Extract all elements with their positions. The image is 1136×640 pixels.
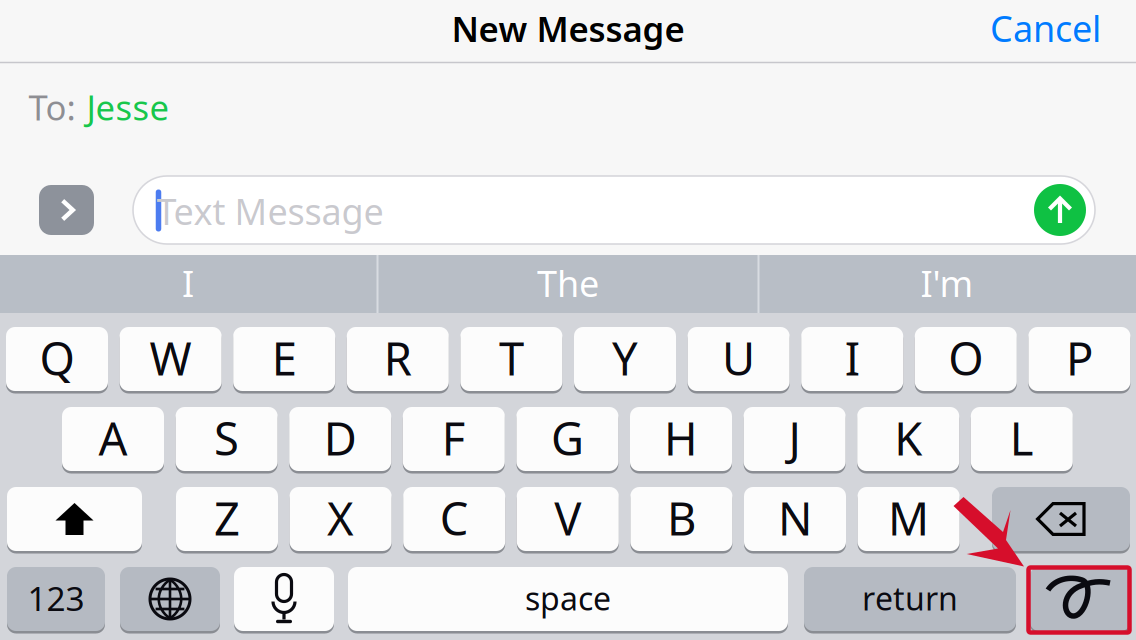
button[interactable]: Z	[176, 487, 278, 551]
staticText: P	[1066, 328, 1093, 388]
button[interactable]: I	[0, 255, 376, 313]
staticText: D	[324, 408, 357, 468]
staticText: B	[667, 488, 696, 548]
button[interactable]: Dictation	[234, 567, 334, 631]
staticText: J	[789, 408, 801, 468]
button[interactable]: L	[971, 407, 1073, 471]
staticText: L	[1010, 408, 1034, 468]
button[interactable]: Q	[6, 327, 108, 391]
button[interactable]: U	[688, 327, 790, 391]
staticText: Y	[612, 328, 638, 388]
staticText: Text Message	[156, 187, 383, 235]
button[interactable]: 123	[7, 567, 105, 631]
staticText: I	[182, 259, 194, 307]
button[interactable]: K	[857, 407, 959, 471]
staticText: S	[214, 408, 239, 468]
staticText: A	[98, 408, 127, 468]
button[interactable]: Next keyboard	[120, 567, 220, 631]
staticText: I'm	[920, 259, 973, 307]
button[interactable]: F	[403, 407, 505, 471]
staticText: E	[272, 328, 297, 388]
button[interactable]: A	[62, 407, 164, 471]
button[interactable]: I'm	[759, 255, 1135, 313]
staticText: New Message	[451, 5, 684, 51]
staticText: return	[862, 577, 958, 619]
button[interactable]: Cancel	[976, 0, 1115, 62]
staticText: H	[664, 408, 698, 468]
button[interactable]: H	[630, 407, 732, 471]
staticText: Cancel	[990, 4, 1101, 52]
staticText: Q	[39, 328, 74, 388]
staticText: M	[888, 488, 929, 548]
staticText: V	[554, 488, 581, 548]
button[interactable]: W	[120, 327, 222, 391]
button[interactable]: B	[630, 487, 732, 551]
button[interactable]: More apps	[39, 185, 94, 235]
button[interactable]: The	[380, 255, 756, 313]
button[interactable]: E	[233, 327, 335, 391]
staticText: Z	[214, 488, 240, 548]
staticText: X	[327, 488, 354, 548]
staticText: T	[499, 328, 524, 388]
button[interactable]: O	[915, 327, 1017, 391]
button[interactable]: P	[1028, 327, 1130, 391]
button[interactable]: return	[804, 567, 1016, 631]
button[interactable]: Y	[574, 327, 676, 391]
button[interactable]: Scribble	[1030, 567, 1130, 631]
button[interactable]: X	[290, 487, 392, 551]
button[interactable]: N	[744, 487, 846, 551]
button[interactable]: Shift	[7, 487, 142, 551]
button[interactable]: G	[516, 407, 618, 471]
staticText: N	[778, 488, 812, 548]
button[interactable]: J	[744, 407, 846, 471]
staticText: 123	[27, 576, 84, 620]
staticText: U	[722, 328, 755, 388]
button[interactable]: D	[289, 407, 391, 471]
button[interactable]: space	[348, 567, 788, 631]
button[interactable]: C	[403, 487, 505, 551]
button[interactable]: T	[460, 327, 562, 391]
staticText: To:	[28, 84, 75, 130]
button[interactable]: V	[517, 487, 619, 551]
button[interactable]: I	[801, 327, 903, 391]
staticText: Jesse	[86, 84, 169, 130]
button[interactable]: Send	[1034, 184, 1086, 236]
staticText: F	[442, 408, 466, 468]
staticText: K	[894, 408, 922, 468]
button[interactable]: S	[176, 407, 278, 471]
button[interactable]: M	[858, 487, 960, 551]
staticText: I	[845, 328, 860, 388]
button[interactable]: R	[347, 327, 449, 391]
staticText: C	[440, 488, 469, 548]
staticText: G	[551, 408, 584, 468]
button[interactable]: Jesse	[78, 76, 177, 138]
staticText: O	[948, 328, 983, 388]
staticText: W	[150, 328, 192, 388]
staticText: space	[525, 577, 611, 619]
staticText: The	[537, 259, 599, 307]
staticText: R	[384, 328, 412, 388]
button[interactable]: Delete	[992, 487, 1130, 551]
